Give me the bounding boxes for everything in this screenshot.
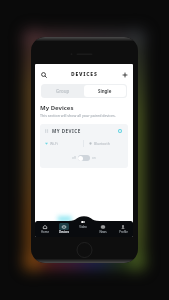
staticText: Bluetooth (94, 141, 110, 146)
staticText: Home (41, 230, 49, 234)
staticText: Profile (119, 230, 128, 234)
button[interactable]: Home (35, 215, 54, 237)
button[interactable]: MY DEVICE (45, 124, 123, 138)
staticText: This section will show all your paired d… (40, 113, 116, 118)
button[interactable]: News (93, 215, 113, 237)
button[interactable]: Search (38, 69, 49, 80)
button[interactable]: Profile (113, 215, 133, 237)
staticText: Devices (59, 230, 69, 234)
button[interactable]: Video (73, 215, 93, 237)
button[interactable]: Add device (119, 69, 130, 80)
staticText: News (99, 230, 107, 234)
button[interactable]: Device status (117, 128, 123, 134)
button[interactable]: Devices (54, 215, 73, 237)
button[interactable]: Single (84, 85, 126, 97)
staticText: Single (98, 88, 112, 94)
staticText: MY DEVICE (52, 128, 81, 134)
staticText: Video (79, 225, 87, 229)
staticText: My Devices (40, 104, 74, 112)
staticText: off (72, 156, 76, 160)
staticText: Group (56, 88, 70, 94)
button[interactable]: Group (42, 85, 84, 97)
staticText: on (92, 156, 96, 160)
staticText: Wi-Fi (50, 141, 58, 146)
staticText: DEVICES (71, 71, 98, 78)
button[interactable]: Power toggle (78, 155, 90, 161)
